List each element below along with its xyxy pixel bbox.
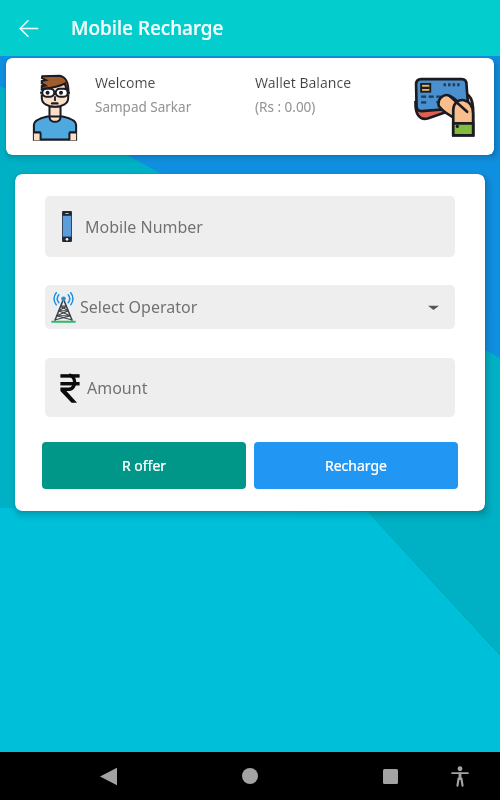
staticText: Recharge xyxy=(325,456,387,475)
staticText: (Rs : 0.00) xyxy=(255,98,316,116)
staticText: Sampad Sarkar xyxy=(95,98,192,116)
button[interactable]: Select Operator xyxy=(45,285,455,329)
staticText: Welcome xyxy=(95,73,156,92)
staticText: Mobile Recharge xyxy=(71,15,224,41)
staticText: Mobile Number xyxy=(85,216,203,238)
button[interactable]: Home xyxy=(228,754,272,798)
staticText: Amount xyxy=(87,377,148,399)
button[interactable]: Amount xyxy=(45,358,455,417)
staticText: R offer xyxy=(122,456,167,475)
button[interactable]: Accessibility xyxy=(438,754,482,798)
staticText: Wallet Balance xyxy=(255,73,352,92)
button[interactable]: Mobile Number xyxy=(45,196,455,257)
button[interactable]: R offer xyxy=(42,442,246,489)
button[interactable]: Back xyxy=(4,4,52,52)
button[interactable]: Welcome xyxy=(6,58,494,155)
button[interactable]: Back xyxy=(86,754,130,798)
staticText: Select Operator xyxy=(80,296,198,318)
button[interactable]: Recharge xyxy=(254,442,458,489)
button[interactable]: Recent apps xyxy=(368,754,412,798)
